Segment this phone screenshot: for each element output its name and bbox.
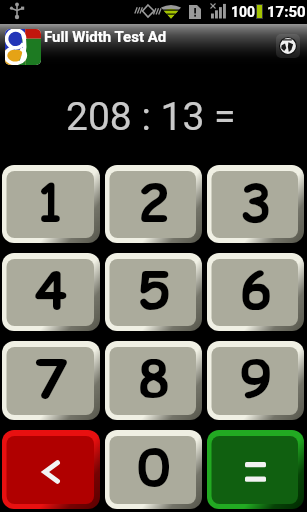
button[interactable]: 6: [207, 253, 304, 331]
staticText: 7: [35, 342, 67, 415]
staticText: 6: [240, 254, 272, 327]
button[interactable]: 0: [105, 430, 202, 509]
staticText: 5: [138, 254, 170, 327]
button[interactable]: Full Width Test Ad: [0, 24, 307, 65]
staticText: 0: [138, 431, 170, 504]
staticText: 2: [138, 166, 170, 239]
button[interactable]: 2: [105, 165, 202, 243]
staticText: 8: [138, 342, 170, 415]
staticText: 4: [35, 254, 67, 327]
staticText: 208 : 13 =: [66, 94, 236, 140]
button[interactable]: 3: [207, 165, 304, 243]
button[interactable]: 9: [207, 341, 304, 420]
staticText: 17:50: [267, 3, 306, 21]
button[interactable]: 8: [105, 341, 202, 420]
staticText: 3: [240, 166, 272, 239]
button[interactable]: Open advertisement: [276, 34, 300, 58]
button[interactable]: 1: [2, 165, 100, 243]
staticText: 9: [240, 342, 272, 415]
staticText: Full Width Test Ad: [44, 28, 167, 46]
staticText: 1: [35, 166, 67, 239]
button[interactable]: 4: [2, 253, 100, 331]
button[interactable]: 7: [2, 341, 100, 420]
staticText: 100: [231, 4, 256, 20]
button[interactable]: Equals: [207, 430, 304, 509]
button[interactable]: Backspace: [2, 430, 100, 509]
button[interactable]: 5: [105, 253, 202, 331]
